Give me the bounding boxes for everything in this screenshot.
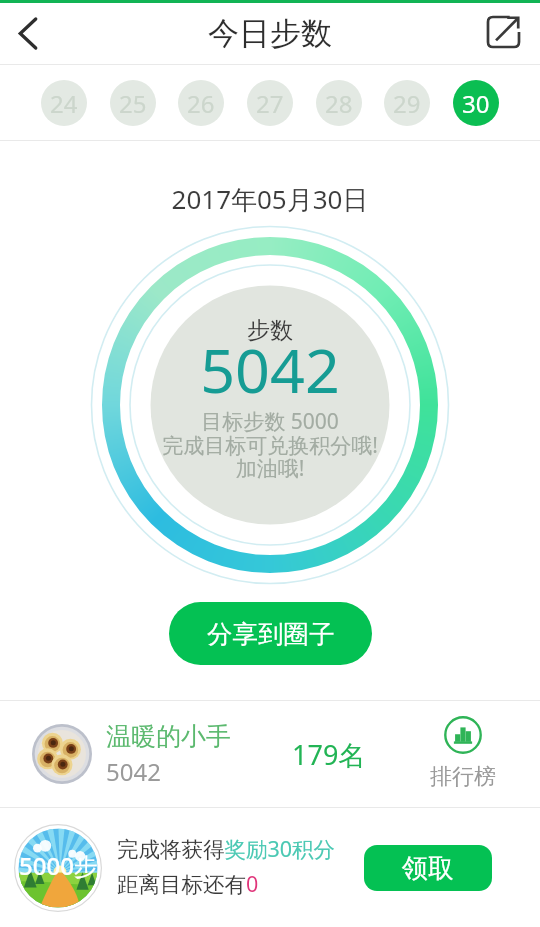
staticText: 2017年05月30日 bbox=[0, 181, 540, 217]
button[interactable]: 25 bbox=[110, 80, 156, 126]
button[interactable]: Share bbox=[476, 3, 540, 64]
staticText: 24 bbox=[50, 87, 78, 120]
staticText: 完成将获得奖励30积分 bbox=[117, 834, 336, 863]
staticText: 5042 bbox=[106, 755, 161, 788]
staticText: 27 bbox=[256, 87, 284, 120]
button[interactable]: Back bbox=[0, 3, 64, 64]
button[interactable]: 领取 bbox=[364, 845, 492, 891]
staticText: 温暖的小手 bbox=[106, 721, 231, 752]
staticText: 领取 bbox=[402, 852, 454, 885]
button[interactable]: 28 bbox=[316, 80, 362, 126]
staticText: 25 bbox=[119, 87, 147, 120]
staticText: 步数 bbox=[0, 316, 540, 345]
button[interactable]: 排行榜 bbox=[385, 716, 540, 791]
staticText: 28 bbox=[325, 87, 353, 120]
button[interactable]: 29 bbox=[384, 80, 430, 126]
button[interactable]: 分享到圈子 bbox=[169, 602, 372, 665]
button[interactable]: 27 bbox=[247, 80, 293, 126]
staticText: 5000步 bbox=[19, 849, 98, 882]
staticText: 30 bbox=[462, 87, 490, 120]
staticText: 29 bbox=[393, 87, 421, 120]
staticText: 179名 bbox=[292, 736, 366, 773]
staticText: 今日步数 bbox=[208, 14, 332, 53]
staticText: 距离目标还有0 bbox=[117, 869, 259, 898]
button[interactable]: 温暖的小手 bbox=[0, 701, 540, 807]
button[interactable]: 30 bbox=[453, 80, 499, 126]
staticText: 目标步数 5000 完成目标可兑换积分哦! 加油哦! bbox=[0, 407, 540, 482]
button[interactable]: 24 bbox=[41, 80, 87, 126]
button[interactable]: 26 bbox=[178, 80, 224, 126]
staticText: 排行榜 bbox=[430, 763, 496, 791]
staticText: 26 bbox=[187, 87, 215, 120]
staticText: 5042 bbox=[0, 328, 540, 411]
staticText: 分享到圈子 bbox=[207, 618, 335, 650]
